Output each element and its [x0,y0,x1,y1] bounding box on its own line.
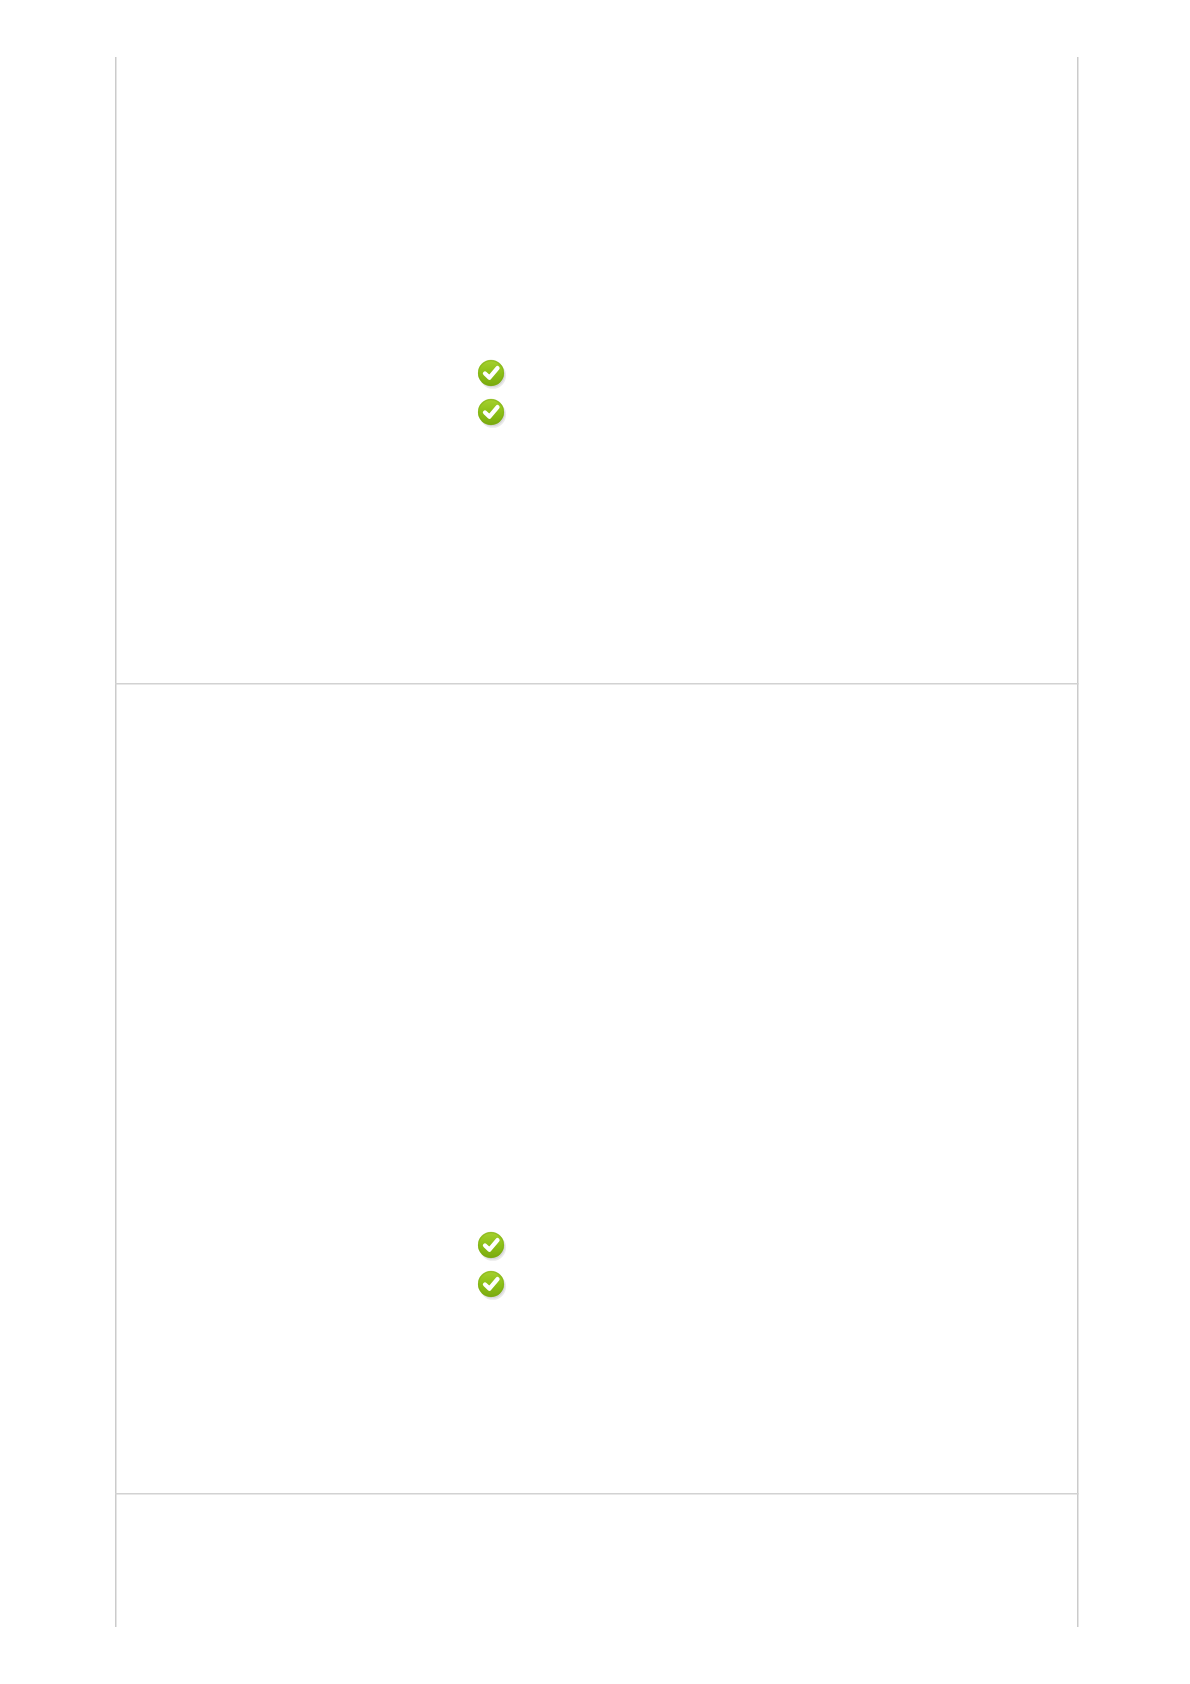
button[interactable]: Verified, item 1 [478,360,504,386]
button[interactable]: Verified, item 3 [478,1232,504,1258]
button[interactable]: Verified, item 2 [478,399,504,425]
button[interactable]: Verified, item 4 [478,1271,504,1297]
